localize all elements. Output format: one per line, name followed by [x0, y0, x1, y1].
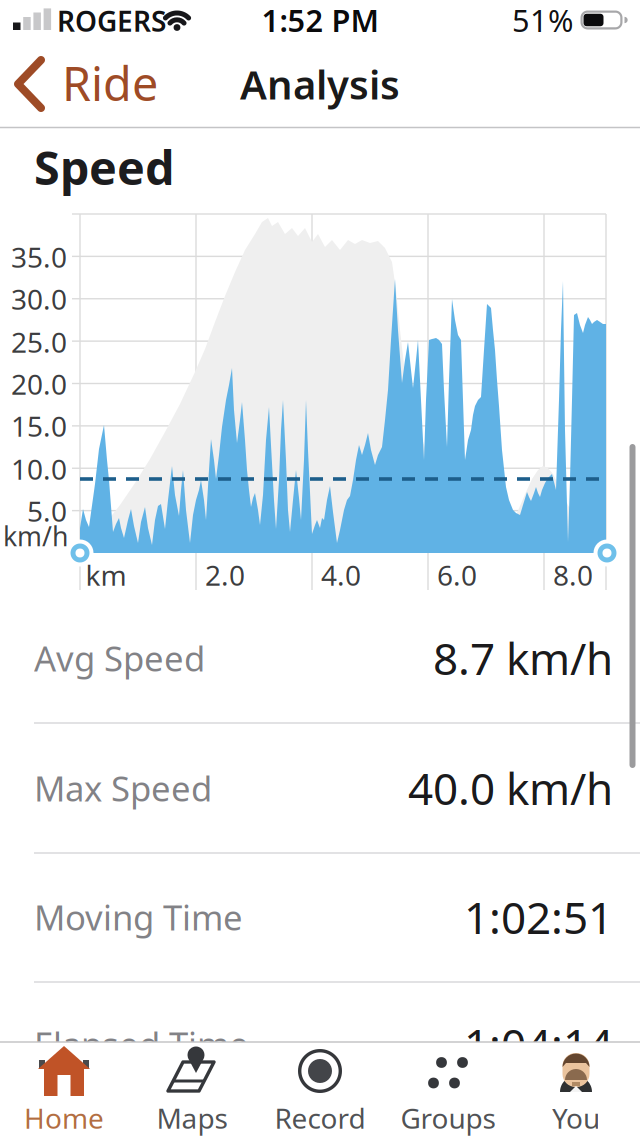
staticText: Analysis	[240, 57, 400, 110]
button[interactable]: Range end	[590, 536, 624, 570]
staticText: You	[552, 1099, 600, 1136]
staticText: 30.0	[11, 280, 67, 318]
staticText: Home	[24, 1099, 104, 1136]
staticText: Max Speed	[34, 765, 212, 811]
staticText: 25.0	[11, 323, 67, 361]
staticText: 1:52 PM	[261, 0, 378, 40]
staticText: 35.0	[11, 238, 67, 276]
staticText: 8.7 km/h	[433, 629, 613, 687]
button[interactable]: Home	[0, 1042, 128, 1136]
staticText: 6.0	[437, 556, 477, 594]
staticText: Record	[274, 1099, 365, 1136]
staticText: 10.0	[11, 450, 67, 488]
staticText: 51%	[512, 0, 573, 40]
staticText: Elapsed Time	[34, 1021, 249, 1067]
staticText: 5.0	[27, 492, 67, 530]
staticText: Ride	[62, 52, 158, 114]
staticText: Maps	[156, 1099, 227, 1136]
staticText: 20.0	[11, 365, 67, 403]
staticText: Moving Time	[34, 894, 243, 940]
button[interactable]: Ride	[12, 53, 172, 115]
staticText: ROGERS	[57, 2, 166, 40]
staticText: 8.0	[553, 556, 593, 594]
button[interactable]: Record	[256, 1042, 384, 1136]
staticText: Speed	[34, 136, 174, 198]
button[interactable]: Groups	[384, 1042, 512, 1136]
button[interactable]: You	[512, 1042, 640, 1136]
staticText: km/h	[3, 518, 68, 554]
staticText: Groups	[400, 1099, 495, 1136]
staticText: km	[85, 556, 126, 594]
button[interactable]: Maps	[128, 1042, 256, 1136]
staticText: 1:02:51	[464, 888, 613, 946]
button[interactable]: Range start	[63, 536, 97, 570]
staticText: 15.0	[11, 407, 67, 445]
staticText: 1:04:14	[464, 1015, 613, 1073]
staticText: 2.0	[205, 556, 245, 594]
staticText: 4.0	[321, 556, 361, 594]
staticText: 40.0 km/h	[408, 759, 613, 817]
staticText: Avg Speed	[34, 635, 205, 681]
